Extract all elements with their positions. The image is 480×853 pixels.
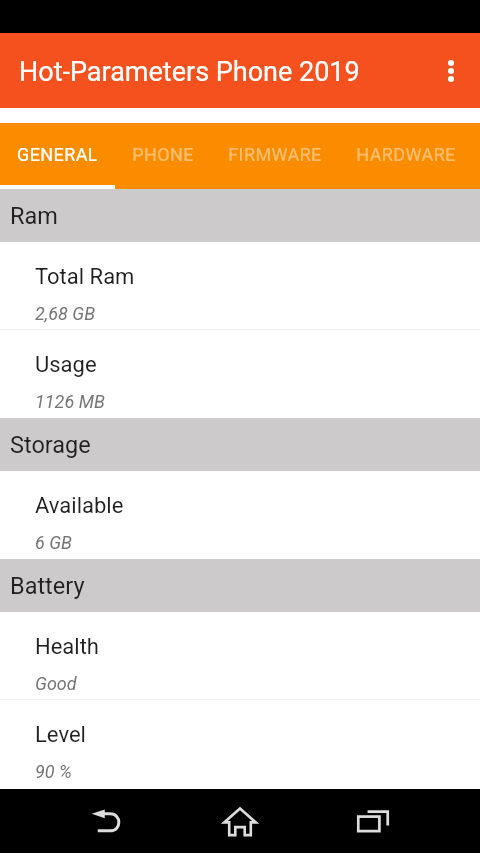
button[interactable]: Available <box>0 471 480 559</box>
staticText: Total Ram <box>35 264 135 290</box>
staticText: Usage <box>35 352 97 378</box>
button[interactable]: Back <box>71 789 143 853</box>
button[interactable]: PHONE <box>115 123 211 189</box>
button[interactable]: Level <box>0 700 480 788</box>
staticText: Level <box>35 722 86 748</box>
staticText: 1126 MB <box>35 391 105 412</box>
button[interactable]: Recent apps <box>337 789 409 853</box>
staticText: Storage <box>10 431 91 459</box>
button[interactable]: More options <box>421 33 480 108</box>
staticText: GENERAL <box>17 144 98 165</box>
staticText: 2,68 GB <box>35 303 96 324</box>
staticText: Health <box>35 634 99 660</box>
staticText: Good <box>35 673 77 694</box>
staticText: 90 % <box>35 761 72 782</box>
button[interactable]: Usage <box>0 330 480 418</box>
staticText: Available <box>35 493 124 519</box>
staticText: 6 GB <box>35 532 73 553</box>
button[interactable]: Total Ram <box>0 242 480 330</box>
staticText: FIRMWARE <box>228 144 322 165</box>
staticText: HARDWARE <box>356 144 456 165</box>
button[interactable]: Home <box>204 789 276 853</box>
staticText: Hot-Parameters Phone 2019 <box>19 56 360 88</box>
staticText: PHONE <box>132 144 194 165</box>
staticText: Battery <box>10 572 85 600</box>
staticText: Ram <box>10 202 58 230</box>
button[interactable]: Health <box>0 612 480 700</box>
button[interactable]: GENERAL <box>0 123 115 189</box>
button[interactable]: FIRMWARE <box>211 123 339 189</box>
button[interactable]: HARDWARE <box>339 123 473 189</box>
